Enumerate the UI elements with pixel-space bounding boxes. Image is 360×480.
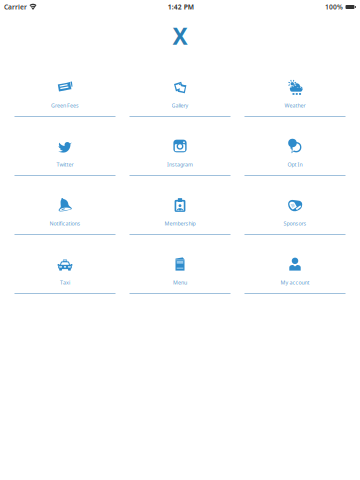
staticText: Gallery	[171, 102, 188, 109]
staticText: My account	[280, 279, 309, 286]
button[interactable]: Taxi	[14, 235, 115, 294]
button[interactable]: Twitter	[14, 117, 115, 176]
button[interactable]: Green Fees	[14, 58, 115, 117]
staticText: Green Fees	[51, 102, 79, 109]
staticText: Taxi	[60, 279, 70, 286]
staticText: Membership	[164, 220, 195, 227]
staticText: Weather	[284, 102, 305, 109]
staticText: Opt In	[287, 161, 302, 168]
staticText: Twitter	[56, 161, 73, 168]
staticText: Menu	[173, 279, 187, 286]
button[interactable]: Sponsors	[244, 176, 345, 235]
button[interactable]: Opt In	[244, 117, 345, 176]
staticText: X	[172, 21, 187, 51]
staticText: Carrier	[4, 3, 27, 11]
staticText: Instagram	[167, 161, 193, 168]
button[interactable]: My account	[244, 235, 345, 294]
staticText: Notifications	[49, 220, 80, 227]
button[interactable]: Weather	[244, 58, 345, 117]
button[interactable]: Membership	[129, 176, 230, 235]
staticText: Sponsors	[283, 220, 306, 227]
button[interactable]: Menu	[129, 235, 230, 294]
staticText: 1:42 PM	[168, 3, 194, 11]
button[interactable]: Instagram	[129, 117, 230, 176]
button[interactable]: Gallery	[129, 58, 230, 117]
button[interactable]: Notifications	[14, 176, 115, 235]
staticText: 100%	[325, 3, 343, 11]
